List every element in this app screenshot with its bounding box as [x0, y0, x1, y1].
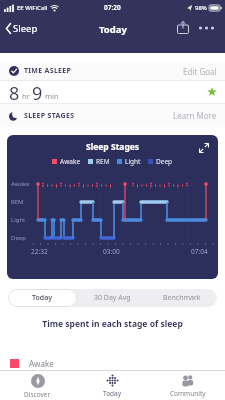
staticText: 98% [195, 4, 207, 12]
staticText: REM [96, 157, 110, 166]
staticText: Today [103, 389, 122, 398]
staticText: Today [32, 293, 53, 303]
staticText: Awake [60, 157, 81, 166]
staticText: EE WiFiCall [17, 4, 48, 12]
staticText: Today [99, 23, 127, 36]
staticText: 07:20 [104, 3, 121, 12]
staticText: Light [11, 216, 26, 224]
staticText: 8 [9, 81, 20, 103]
staticText: Awake [11, 180, 30, 188]
staticText: Edit Goal [183, 66, 217, 77]
staticText: Sleep [13, 22, 38, 35]
button[interactable]: Benchmark [147, 289, 217, 307]
staticText: Community [170, 389, 206, 398]
button[interactable]: Discover [0, 371, 75, 400]
staticText: Discover [24, 390, 51, 399]
staticText: SLEEP STAGES [24, 111, 75, 121]
staticText: min [45, 91, 59, 101]
staticText: Benchmark [163, 293, 201, 303]
staticText: Time spent in each stage of sleep [0, 318, 225, 330]
button[interactable]: Sleep [5, 22, 38, 35]
button[interactable] [198, 23, 215, 33]
staticText: Awake [29, 358, 54, 369]
staticText: Deep [11, 234, 26, 242]
staticText: Sleep Stages [86, 141, 140, 153]
button[interactable]: Sleep Stages [7, 135, 218, 279]
staticText: Deep [156, 157, 173, 166]
staticText: REM [11, 198, 24, 206]
staticText: TIME ASLEEP [24, 66, 72, 76]
button[interactable]: Learn More [173, 110, 217, 121]
staticText: Light [125, 157, 141, 166]
staticText: 30 Day Avg [94, 293, 131, 303]
button[interactable]: 30 Day Avg [77, 289, 147, 307]
staticText: Learn More [173, 110, 217, 121]
button[interactable]: Today [75, 371, 150, 400]
staticText: hr [22, 91, 30, 101]
staticText: 9 [32, 81, 43, 103]
button[interactable]: Today [8, 289, 77, 307]
button[interactable]: Community [150, 371, 225, 400]
staticText: 07:04 [191, 247, 208, 256]
button[interactable] [177, 21, 189, 34]
staticText: 22:32 [31, 247, 48, 256]
staticText: 03:00 [103, 247, 120, 256]
button[interactable]: Edit Goal [183, 66, 217, 77]
